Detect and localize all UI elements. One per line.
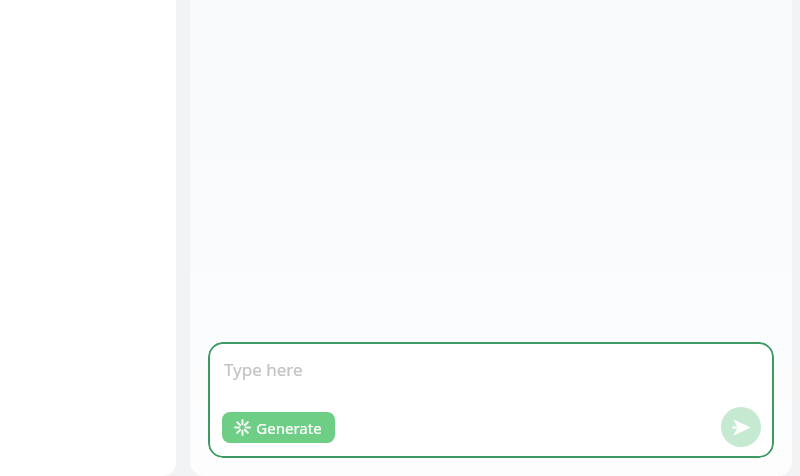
button[interactable]: Type here — [224, 358, 303, 381]
button[interactable]: Generate — [222, 412, 335, 443]
staticText: Generate — [256, 418, 322, 438]
button[interactable]: Send — [721, 407, 761, 447]
